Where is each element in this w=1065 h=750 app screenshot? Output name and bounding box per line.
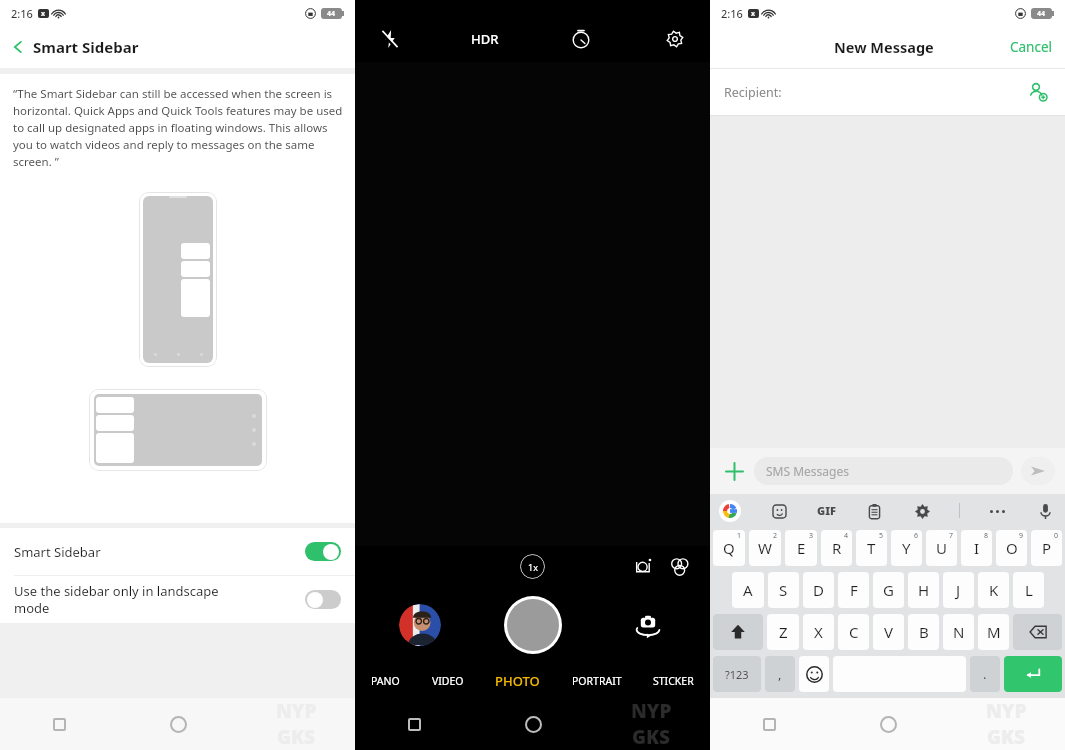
staticText: GIF — [817, 503, 836, 518]
staticText: J — [956, 580, 961, 600]
button[interactable]: Back — [0, 26, 355, 68]
button[interactable]: Smart Sidebar — [0, 528, 355, 575]
button[interactable]: Google — [719, 500, 741, 522]
staticText: . — [983, 665, 987, 683]
button[interactable]: V — [873, 614, 904, 650]
staticText: ?123 — [725, 667, 749, 682]
staticText: Q — [723, 538, 735, 558]
button[interactable]: W — [749, 530, 781, 566]
button[interactable]: SMS Messages — [754, 457, 1013, 485]
button[interactable]: Filters — [668, 555, 690, 577]
staticText: New Message — [834, 37, 934, 57]
button[interactable]: B — [908, 614, 939, 650]
button[interactable]: H — [908, 572, 939, 608]
staticText: I — [974, 538, 980, 558]
button[interactable]: HDR — [471, 30, 499, 48]
staticText: 1x — [528, 561, 538, 573]
button[interactable]: ?123 — [713, 656, 761, 692]
button[interactable]: Timer — [568, 26, 594, 52]
staticText: PORTRAIT — [572, 674, 622, 688]
staticText: V — [884, 622, 894, 642]
button[interactable]: M — [978, 614, 1009, 650]
button[interactable]: Beauty — [632, 555, 654, 577]
button[interactable]: N — [943, 614, 974, 650]
button[interactable]: Flash off — [377, 26, 403, 52]
staticText: GKS — [987, 724, 1026, 750]
button[interactable]: Q — [713, 530, 745, 566]
button[interactable]: Z — [767, 614, 799, 650]
staticText: 7 — [949, 531, 954, 541]
staticText: Smart Sidebar — [33, 37, 139, 57]
button[interactable]: Recents — [763, 718, 776, 731]
button[interactable]: S — [768, 572, 799, 608]
button[interactable]: GIF — [817, 503, 836, 518]
button[interactable]: J — [943, 572, 974, 608]
button[interactable]: Emoji — [799, 656, 829, 692]
button[interactable]: Clipboard — [863, 500, 885, 522]
button[interactable]: E — [785, 530, 817, 566]
button[interactable]: Recents — [408, 718, 421, 731]
button[interactable]: VIDEO — [430, 674, 466, 688]
button[interactable]: Send — [1021, 457, 1055, 485]
button[interactable]: Settings — [662, 26, 688, 52]
staticText: 2:16 — [11, 6, 33, 21]
button[interactable]: Home — [525, 716, 542, 733]
button[interactable]: C — [838, 614, 869, 650]
button[interactable]: Cancel — [998, 38, 1065, 56]
button[interactable]: I — [961, 530, 992, 566]
button[interactable]: K — [978, 572, 1009, 608]
button[interactable]: Shift — [713, 614, 763, 650]
button[interactable]: Add contact — [1025, 79, 1051, 105]
button[interactable]: 1x — [520, 554, 545, 579]
staticText: Use the sidebar only in landscape mode — [14, 582, 305, 617]
staticText: N — [953, 622, 965, 642]
button[interactable]: More — [986, 500, 1008, 522]
button[interactable]: R — [821, 530, 852, 566]
button[interactable]: Voice input — [1034, 500, 1056, 522]
staticText: U — [936, 538, 947, 558]
button[interactable]: , — [765, 656, 795, 692]
button[interactable]: Attach — [720, 457, 748, 485]
button[interactable]: Gallery — [399, 604, 441, 646]
button[interactable]: L — [1013, 572, 1044, 608]
staticText: STICKER — [653, 674, 694, 688]
button[interactable]: O — [996, 530, 1027, 566]
staticText: G — [883, 580, 894, 600]
staticText: 5 — [879, 531, 884, 541]
button[interactable]: PORTRAIT — [570, 674, 624, 688]
staticText: L — [1025, 580, 1033, 600]
staticText: Y — [902, 538, 911, 558]
button[interactable]: Recents — [53, 718, 66, 731]
button[interactable]: PANO — [369, 674, 402, 688]
button[interactable]: F — [838, 572, 869, 608]
button[interactable]: P — [1031, 530, 1062, 566]
button[interactable]: X — [803, 614, 834, 650]
button[interactable]: Y — [891, 530, 922, 566]
staticText: R — [832, 538, 842, 558]
button[interactable]: Switch camera — [630, 607, 666, 643]
button[interactable]: G — [873, 572, 904, 608]
button[interactable]: Shutter — [504, 596, 562, 654]
button[interactable]: Use the sidebar only in landscape mode — [0, 576, 355, 623]
button[interactable]: Home — [880, 716, 897, 733]
button[interactable]: PHOTO — [493, 672, 542, 690]
staticText: A — [743, 580, 753, 600]
staticText: M — [987, 622, 1001, 642]
staticText: 2:16 — [721, 6, 743, 21]
button[interactable]: Enter — [1004, 656, 1062, 692]
button[interactable]: U — [926, 530, 957, 566]
button[interactable]: T — [856, 530, 887, 566]
button[interactable]: D — [803, 572, 834, 608]
button[interactable]: Backspace — [1013, 614, 1062, 650]
staticText: 44 — [327, 9, 336, 19]
button[interactable]: STICKER — [651, 674, 696, 688]
button[interactable]: A — [732, 572, 764, 608]
staticText: F — [850, 580, 858, 600]
staticText: 4 — [844, 531, 849, 541]
button[interactable]: . — [970, 656, 1000, 692]
button[interactable]: Home — [170, 716, 187, 733]
button[interactable]: Keyboard settings — [911, 500, 933, 522]
button[interactable]: Stickers — [768, 500, 790, 522]
staticText: S — [779, 580, 788, 600]
